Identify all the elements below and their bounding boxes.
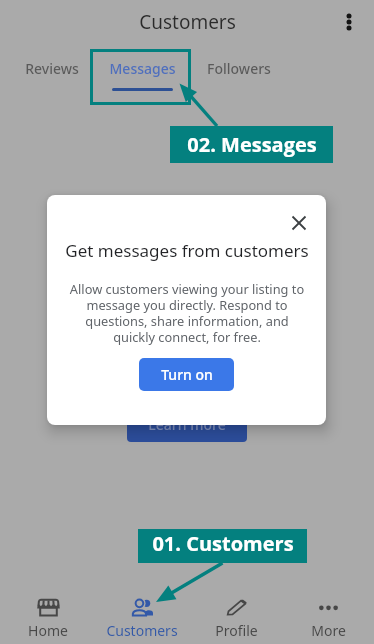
button[interactable]: Reviews — [6, 46, 97, 92]
button[interactable]: Customers — [95, 590, 189, 644]
button[interactable]: More options — [329, 1, 369, 41]
button[interactable]: Learn more — [127, 406, 247, 442]
button[interactable]: Turn on — [139, 358, 234, 391]
staticText: Reviews — [25, 59, 79, 78]
staticText: Customers — [139, 9, 236, 35]
staticText: 02. Messages — [187, 131, 317, 158]
staticText: Learn more — [148, 415, 226, 434]
button[interactable]: Close — [282, 206, 315, 239]
staticText: Get messages from customers — [65, 239, 309, 262]
staticText: Profile — [215, 621, 258, 640]
staticText: Customers — [106, 621, 178, 640]
button[interactable]: Messages — [97, 46, 188, 92]
button[interactable]: Home — [1, 590, 95, 644]
button[interactable]: Followers — [191, 46, 287, 92]
staticText: Home — [28, 621, 68, 640]
staticText: Allow customers viewing your listing to … — [68, 280, 306, 345]
button[interactable]: More — [283, 590, 374, 644]
button[interactable]: Profile — [189, 590, 283, 644]
staticText: Turn on — [161, 365, 213, 384]
staticText: 01. Customers — [152, 530, 294, 557]
staticText: More — [311, 621, 346, 640]
staticText: Followers — [207, 59, 271, 78]
staticText: Messages — [109, 59, 176, 78]
